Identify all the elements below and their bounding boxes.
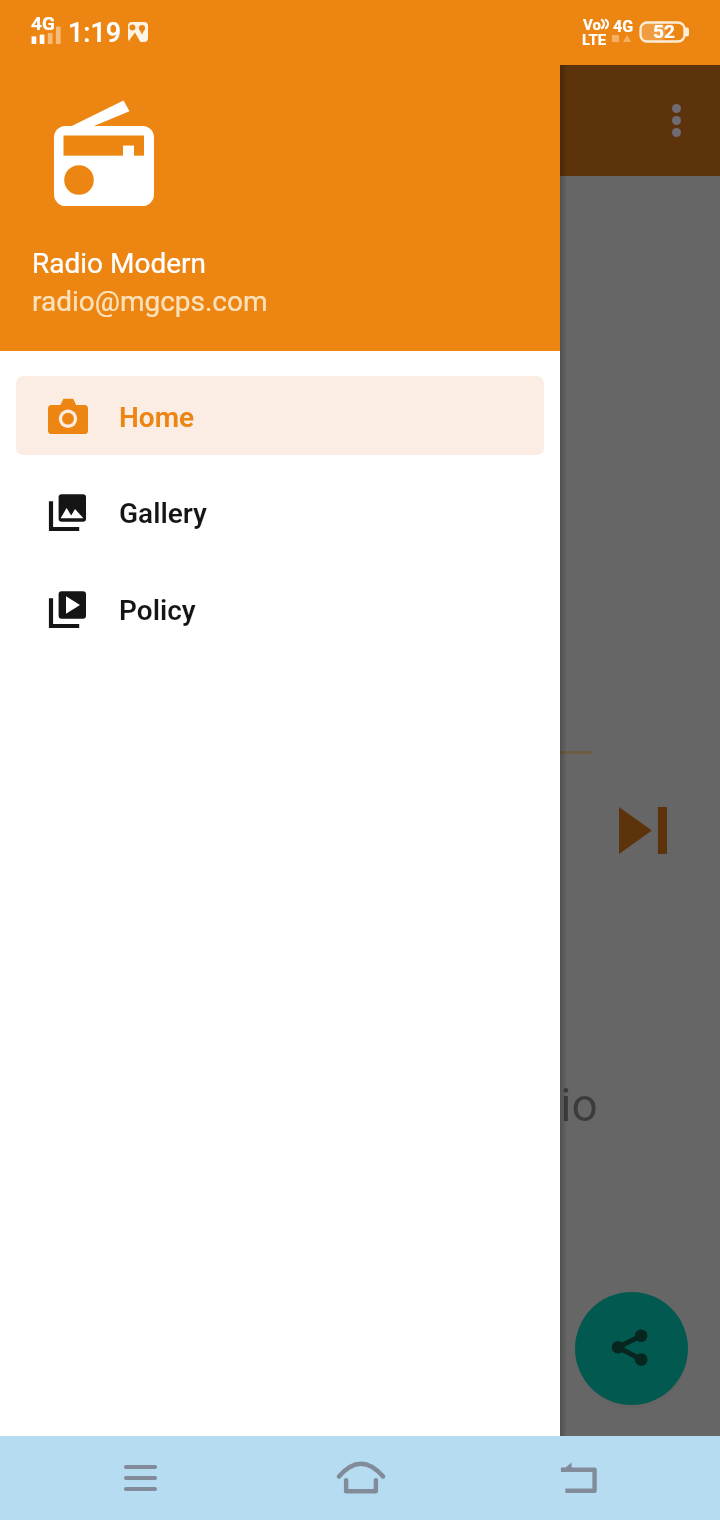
staticText: LTE [582, 31, 607, 49]
staticText: Policy [119, 594, 196, 627]
button[interactable]: Policy [16, 569, 544, 648]
staticText: Radio [481, 1078, 598, 1132]
button[interactable]: Home [16, 376, 544, 455]
button[interactable]: Gallery [16, 472, 544, 551]
button[interactable]: Back [544, 1436, 617, 1520]
button[interactable]: More options [652, 64, 700, 176]
staticText: 52 [653, 20, 675, 42]
staticText: radio@mgcps.com [32, 285, 268, 318]
staticText: 4G [31, 12, 55, 34]
staticText: Gallery [119, 497, 207, 530]
staticText: Home [119, 401, 195, 434]
staticText: 1:19 [68, 17, 122, 49]
staticText: 4G [613, 17, 634, 36]
staticText: Vo [583, 16, 601, 34]
button[interactable]: Home [324, 1436, 397, 1520]
button[interactable]: Share [575, 1292, 688, 1405]
staticText: Radio Modern [32, 247, 207, 280]
button[interactable]: Recents [104, 1436, 177, 1520]
